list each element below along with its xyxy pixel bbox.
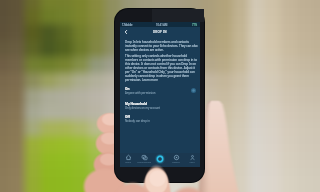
button[interactable]: On [120,87,200,98]
staticText: Anyone with permission [125,91,156,95]
staticText: T-Mobile [122,23,133,27]
staticText: 10:41 AM [156,23,168,27]
staticText: Devices [172,161,180,164]
staticText: My Household [125,102,148,106]
button[interactable]: My Household [120,102,200,113]
staticText: Home [125,161,131,164]
button[interactable]: Back [122,28,130,36]
staticText: 77% [192,23,198,27]
button[interactable]: Communicate [136,153,152,167]
staticText: On [125,87,130,91]
button[interactable]: More [184,153,200,167]
staticText: Drop In lets household members and conta… [125,40,198,52]
staticText: More [189,161,195,164]
staticText: Communicate [137,161,151,164]
staticText: Only devices on my account [125,106,161,110]
button[interactable]: Alexa [152,153,168,167]
button[interactable]: Home [120,153,136,167]
staticText: DROP IN [153,30,167,34]
button[interactable]: Devices [168,153,184,167]
staticText: Off [125,115,130,119]
staticText: This setting only controls whether house… [125,54,198,82]
staticText: Nobody can drop in [125,119,150,123]
button[interactable]: Off [120,115,200,126]
